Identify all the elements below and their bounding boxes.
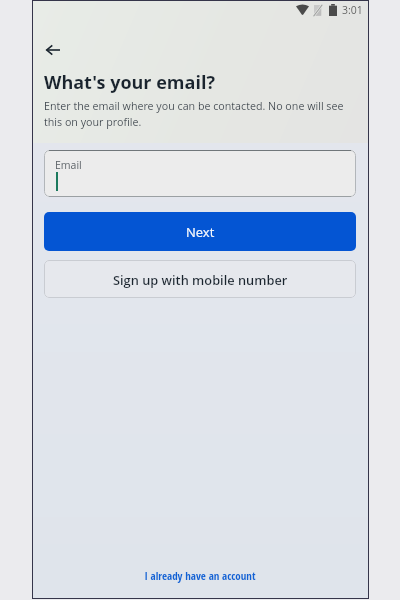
staticText: Sign up with mobile number: [113, 271, 288, 288]
staticText: What's your email?: [44, 70, 215, 95]
staticText: 3:01: [342, 3, 363, 17]
staticText: Next: [186, 223, 215, 241]
button[interactable]: Sign up with mobile number: [44, 260, 356, 298]
staticText: Enter the email where you can be contact…: [44, 99, 347, 129]
button[interactable]: Email: [44, 150, 356, 197]
staticText: Email: [55, 158, 82, 172]
button[interactable]: I already have an account: [138, 563, 262, 587]
button[interactable]: Next: [44, 212, 356, 251]
staticText: I already have an account: [144, 568, 256, 583]
button[interactable]: Back: [36, 33, 69, 66]
